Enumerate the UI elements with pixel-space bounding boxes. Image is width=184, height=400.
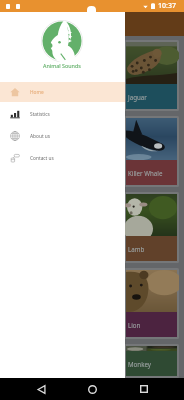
staticText: Lamb (128, 245, 145, 253)
staticText: Home (30, 89, 44, 96)
staticText: Killer Whale (128, 169, 163, 177)
button[interactable]: Monkey (124, 344, 179, 378)
staticText: About us (30, 133, 51, 140)
staticText: Cat (9, 93, 19, 101)
staticText: Monkey (128, 360, 152, 368)
staticText: Jaguar (128, 93, 147, 101)
button[interactable]: Home (81, 378, 103, 400)
button[interactable]: Killer Whale (124, 116, 179, 187)
button[interactable]: Lion (124, 268, 179, 339)
button[interactable]: Home (0, 81, 125, 103)
button[interactable]: Recent apps (133, 378, 155, 400)
button[interactable]: Back (30, 378, 52, 400)
button[interactable]: Bear (64, 40, 119, 111)
button[interactable]: Lamb (124, 192, 179, 263)
staticText: Animal Sounds (43, 62, 81, 69)
button[interactable]: About us (0, 125, 125, 147)
button[interactable]: Cat (5, 40, 59, 111)
staticText: Statistics (30, 111, 50, 118)
staticText: Lion (128, 321, 141, 329)
button[interactable]: Dog (5, 116, 59, 187)
button[interactable]: Contact us (0, 147, 125, 169)
button[interactable]: Statistics (0, 103, 125, 125)
staticText: 10:37 (158, 1, 176, 11)
button[interactable]: Jaguar (124, 40, 179, 111)
staticText: Contact us (30, 155, 54, 162)
